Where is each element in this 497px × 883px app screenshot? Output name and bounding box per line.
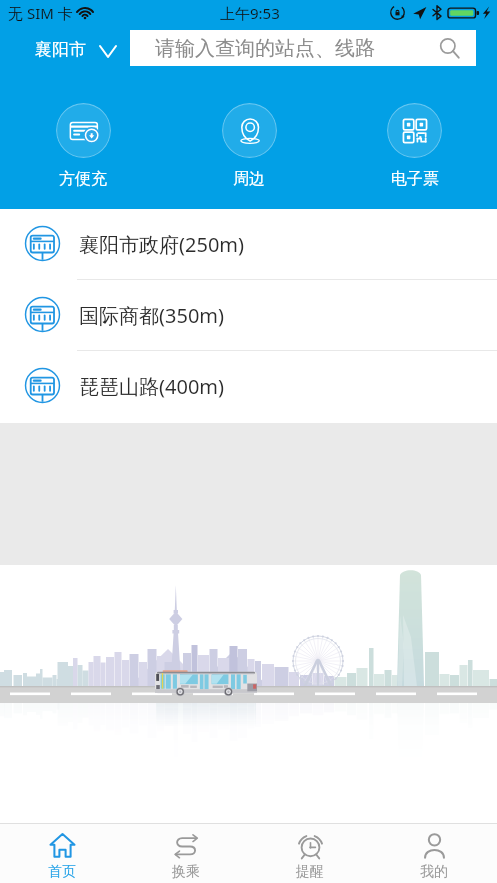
- staticText: 襄阳市政府(250m): [79, 231, 245, 258]
- button[interactable]: 换乘: [124, 824, 248, 883]
- staticText: 我的: [420, 863, 448, 881]
- staticText: 请输入查询的站点、线路: [155, 36, 375, 61]
- staticText: 方便充: [59, 169, 107, 189]
- button[interactable]: 首页: [0, 824, 124, 883]
- other: Search: [439, 38, 460, 59]
- button[interactable]: 国际商都(350m): [0, 280, 497, 351]
- button[interactable]: 方便充: [0, 103, 166, 189]
- staticText: 上午9:53: [220, 3, 280, 23]
- button[interactable]: 琵琶山路(400m): [0, 351, 497, 422]
- staticText: 国际商都(350m): [79, 302, 225, 329]
- staticText: 襄阳市: [35, 39, 86, 60]
- button[interactable]: 周边: [166, 103, 332, 189]
- button[interactable]: 电子票: [332, 103, 497, 189]
- button[interactable]: 我的: [372, 824, 496, 883]
- staticText: 换乘: [172, 863, 200, 881]
- staticText: 首页: [48, 863, 76, 881]
- staticText: 周边: [233, 169, 265, 189]
- button[interactable]: 襄阳市: [30, 36, 122, 62]
- staticText: 无 SIM 卡: [8, 3, 73, 23]
- staticText: 提醒: [296, 863, 324, 881]
- button[interactable]: 提醒: [248, 824, 372, 883]
- button[interactable]: 请输入查询的站点、线路: [130, 30, 476, 66]
- button[interactable]: 襄阳市政府(250m): [0, 209, 497, 280]
- staticText: 琵琶山路(400m): [79, 373, 225, 400]
- staticText: 电子票: [391, 169, 439, 189]
